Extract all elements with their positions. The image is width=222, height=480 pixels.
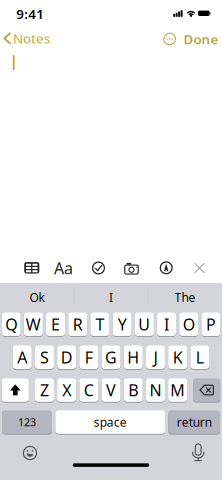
- staticText: F: [85, 347, 93, 368]
- staticText: V: [106, 379, 116, 401]
- button[interactable]: O: [179, 312, 198, 336]
- staticText: S: [40, 347, 49, 368]
- staticText: G: [105, 347, 117, 368]
- button[interactable]: P: [201, 312, 220, 336]
- staticText: L: [196, 347, 204, 368]
- button[interactable]: Delete: [193, 378, 220, 402]
- button[interactable]: G: [102, 345, 120, 369]
- staticText: K: [173, 347, 183, 368]
- staticText: U: [138, 314, 150, 335]
- staticText: H: [127, 347, 139, 368]
- button[interactable]: J: [146, 345, 165, 369]
- button[interactable]: N: [146, 378, 165, 402]
- button[interactable]: U: [135, 312, 154, 336]
- button[interactable]: R: [68, 312, 87, 336]
- staticText: N: [149, 379, 161, 401]
- button[interactable]: Checklist: [92, 261, 105, 274]
- button[interactable]: More: [163, 32, 176, 45]
- button[interactable]: K: [168, 345, 187, 369]
- staticText: J: [153, 347, 157, 368]
- button[interactable]: Back to Notes: [3, 29, 50, 47]
- button[interactable]: E: [46, 312, 65, 336]
- button[interactable]: H: [124, 345, 143, 369]
- button[interactable]: M: [168, 378, 187, 402]
- button[interactable]: X: [57, 378, 76, 402]
- staticText: O: [183, 314, 195, 335]
- button[interactable]: Q: [2, 312, 21, 336]
- button[interactable]: Z: [35, 378, 54, 402]
- button[interactable]: B: [124, 378, 143, 402]
- staticText: P: [206, 314, 216, 335]
- button[interactable]: D: [57, 345, 76, 369]
- button[interactable]: Dictate: [191, 443, 205, 462]
- staticText: return: [177, 414, 212, 430]
- button[interactable]: S: [35, 345, 54, 369]
- staticText: E: [51, 314, 60, 335]
- button[interactable]: Emoji: [23, 446, 37, 460]
- button[interactable]: Insert photo: [123, 261, 139, 275]
- button[interactable]: Y: [113, 312, 132, 336]
- button[interactable]: Format: [54, 257, 73, 279]
- button[interactable]: I: [76, 286, 146, 308]
- staticText: space: [94, 414, 127, 430]
- staticText: I: [109, 289, 113, 305]
- staticText: Aa: [54, 257, 73, 279]
- button[interactable]: V: [102, 378, 120, 402]
- staticText: T: [95, 314, 104, 335]
- staticText: X: [62, 379, 71, 401]
- button[interactable]: Markup: [160, 261, 173, 274]
- button[interactable]: L: [190, 345, 209, 369]
- staticText: 123: [18, 415, 36, 429]
- button[interactable]: Shift: [2, 378, 29, 402]
- staticText: A: [17, 347, 27, 368]
- button[interactable]: I: [157, 312, 176, 336]
- button[interactable]: return: [168, 410, 220, 434]
- button[interactable]: C: [79, 378, 98, 402]
- button[interactable]: 123: [2, 410, 52, 434]
- button[interactable]: A: [13, 345, 32, 369]
- button[interactable]: Ok: [2, 286, 72, 308]
- staticText: D: [61, 347, 73, 368]
- staticText: Y: [118, 314, 127, 335]
- staticText: Z: [40, 379, 49, 401]
- button[interactable]: The: [150, 286, 220, 308]
- staticText: M: [170, 379, 185, 401]
- staticText: I: [164, 314, 169, 335]
- button[interactable]: W: [24, 312, 43, 336]
- button[interactable]: Dismiss toolbar: [194, 263, 204, 273]
- staticText: Q: [5, 314, 17, 335]
- staticText: B: [128, 379, 138, 401]
- staticText: C: [84, 379, 94, 401]
- button[interactable]: space: [55, 410, 165, 434]
- button[interactable]: Done: [183, 30, 218, 48]
- staticText: R: [73, 314, 83, 335]
- button[interactable]: F: [79, 345, 98, 369]
- staticText: 9:41: [16, 5, 44, 23]
- staticText: Ok: [29, 289, 44, 305]
- staticText: Done: [183, 30, 218, 48]
- button[interactable]: T: [90, 312, 109, 336]
- staticText: W: [26, 314, 41, 335]
- staticText: The: [174, 289, 195, 305]
- staticText: Notes: [13, 29, 50, 47]
- button[interactable]: Insert table: [24, 262, 39, 273]
